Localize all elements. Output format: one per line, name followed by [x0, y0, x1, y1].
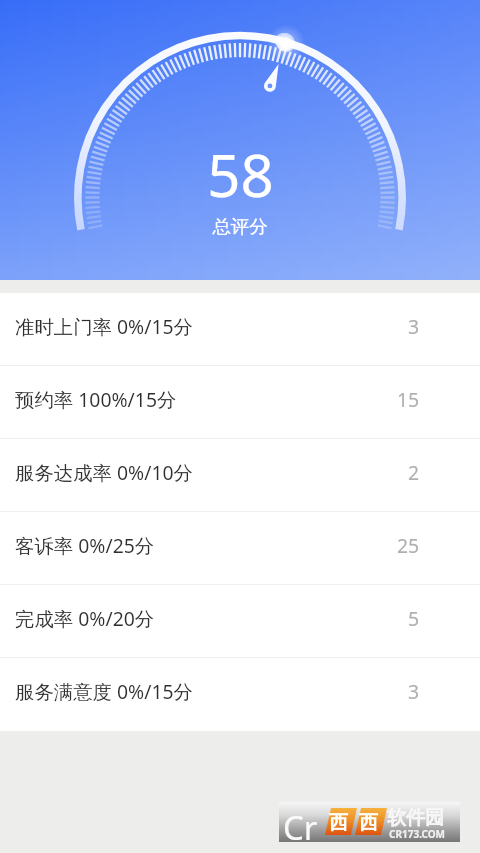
button[interactable]: 完成率 0%/20分: [0, 585, 480, 658]
staticText: 软件园: [387, 806, 444, 830]
staticText: 5: [408, 605, 420, 631]
staticText: 预约率 100%/15分: [15, 386, 177, 412]
button[interactable]: 客诉率 0%/25分: [0, 512, 480, 585]
staticText: 服务达成率 0%/10分: [15, 459, 193, 485]
staticText: 15: [397, 386, 420, 412]
staticText: 3: [408, 313, 420, 339]
button[interactable]: 准时上门率 0%/15分: [0, 293, 480, 366]
staticText: 准时上门率 0%/15分: [15, 313, 193, 339]
staticText: 总评分: [212, 215, 268, 238]
staticText: 完成率 0%/20分: [15, 605, 155, 631]
staticText: 西: [329, 811, 348, 835]
button[interactable]: 服务达成率 0%/10分: [0, 439, 480, 512]
button[interactable]: 服务满意度 0%/15分: [0, 658, 480, 731]
staticText: CR173.COM: [389, 827, 446, 841]
staticText: 西: [359, 811, 378, 835]
staticText: 3: [408, 678, 420, 704]
staticText: 25: [397, 532, 420, 558]
staticText: 客诉率 0%/25分: [15, 532, 155, 558]
other: cr173.com watermark: [279, 802, 460, 842]
staticText: Cr: [283, 805, 318, 845]
staticText: 2: [408, 459, 420, 485]
staticText: 服务满意度 0%/15分: [15, 678, 193, 704]
staticText: 58: [207, 135, 274, 214]
button[interactable]: 预约率 100%/15分: [0, 366, 480, 439]
